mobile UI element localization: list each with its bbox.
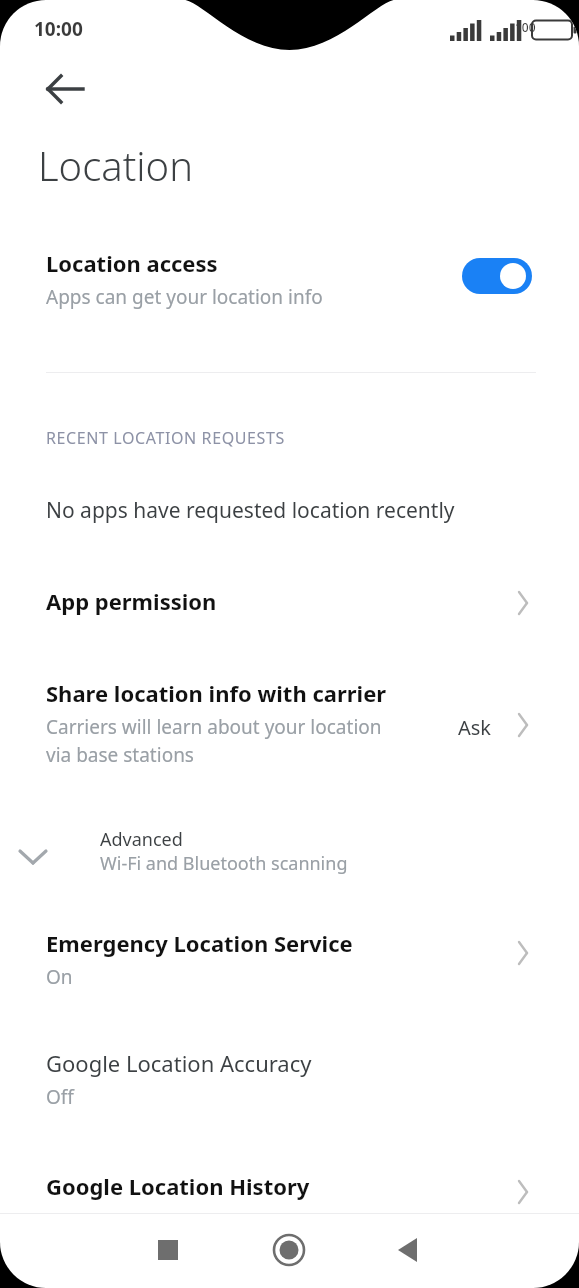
button[interactable]: Back [28,62,82,116]
staticText: 10:00 [34,16,83,42]
staticText: On [46,964,73,990]
button[interactable]: Location access [0,232,579,332]
staticText: Share location info with carrier [46,678,387,708]
button[interactable]: Google Location Accuracy [0,1032,579,1132]
button[interactable]: App permission [0,568,579,634]
other: Location access toggle [462,258,532,294]
staticText: Advanced [100,827,183,852]
staticText: Wi-Fi and Bluetooth scanning [100,851,348,876]
button[interactable]: No apps have requested location recently [0,488,579,540]
button[interactable]: Recent apps [144,1226,192,1274]
staticText: Location access [46,248,218,278]
button[interactable]: Share location info with carrier [0,664,579,790]
button[interactable]: Google Location History [0,1155,579,1215]
staticText: RECENT LOCATION REQUESTS [46,427,285,449]
staticText: Apps can get your location info [46,284,323,310]
staticText: via base stations [46,742,194,768]
staticText: Carriers will learn about your location [46,714,382,740]
staticText: Location [38,138,193,192]
staticText: Off [46,1084,74,1110]
staticText: Emergency Location Service [46,928,353,958]
staticText: No apps have requested location recently [46,496,455,525]
button[interactable]: Emergency Location Service [0,912,579,1012]
staticText: App permission [46,586,217,616]
staticText: Google Location History [46,1171,310,1201]
button[interactable]: Home [265,1226,313,1274]
button[interactable]: Back [384,1226,432,1274]
staticText: 100 [515,19,536,35]
button[interactable]: Advanced [0,818,579,904]
staticText: Ask [458,714,492,741]
staticText: Google Location Accuracy [46,1048,312,1078]
